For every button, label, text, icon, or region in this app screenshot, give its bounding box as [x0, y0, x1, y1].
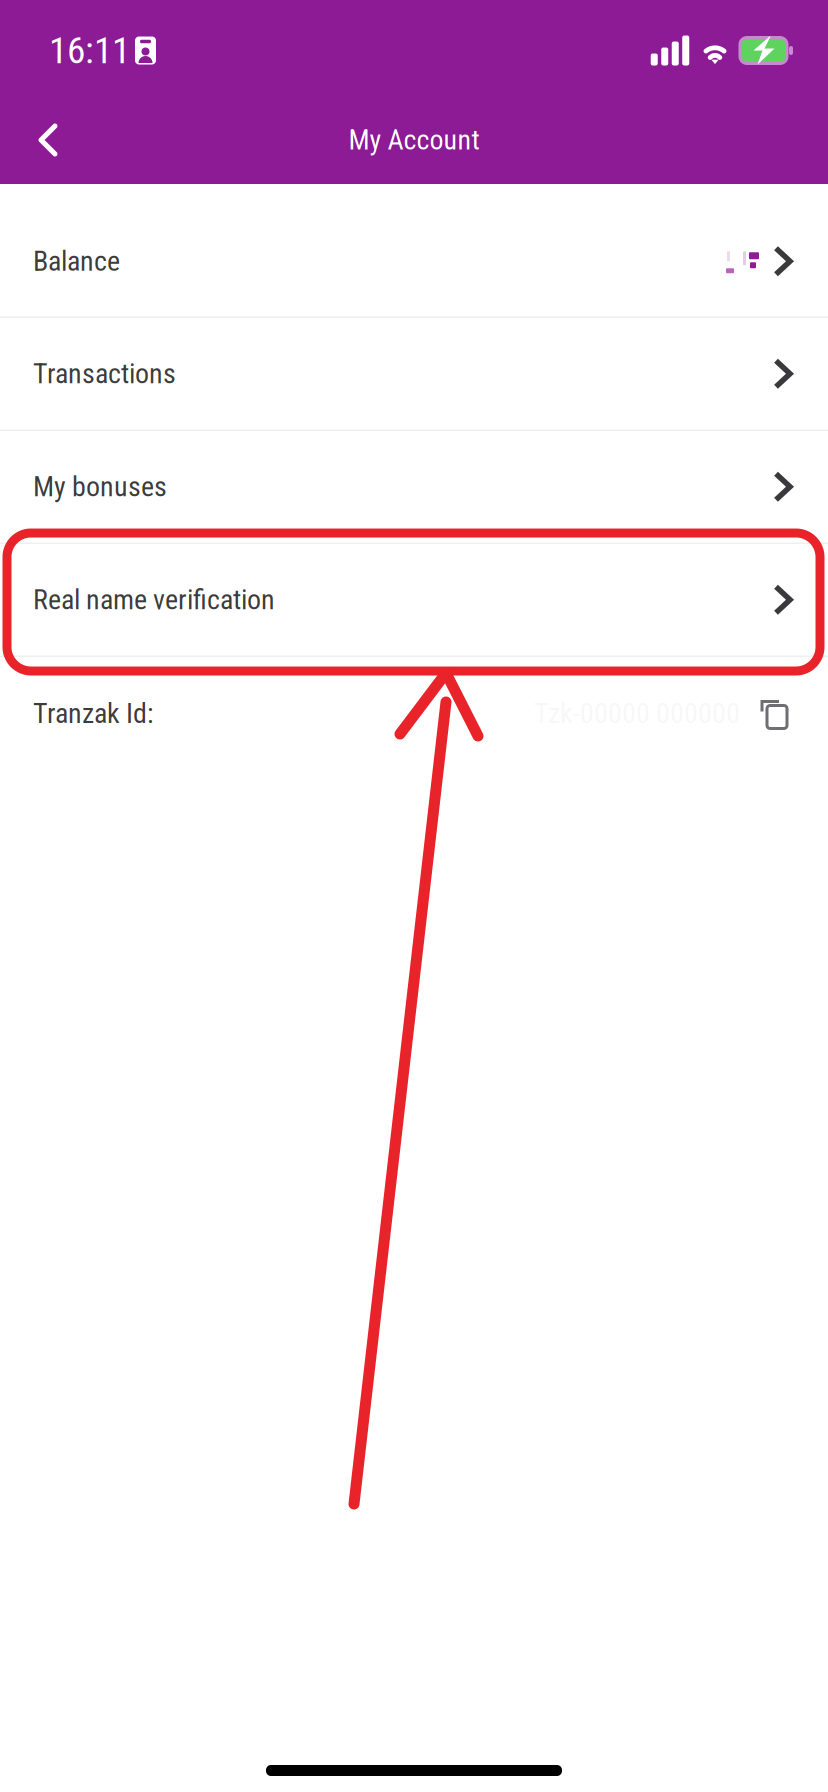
staticText: Transactions	[33, 357, 176, 390]
staticText: My bonuses	[33, 470, 167, 503]
button[interactable]: Real name verification	[0, 544, 828, 657]
button[interactable]: Transactions	[0, 318, 828, 431]
staticText: Balance	[33, 245, 120, 278]
staticText: My Account	[348, 124, 479, 156]
staticText: Real name verification	[33, 583, 275, 616]
button[interactable]: Copy Tranzak Id	[760, 698, 788, 728]
button[interactable]: Back	[0, 96, 88, 184]
staticText: Tranzak Id:	[33, 697, 154, 730]
button[interactable]: Balance	[0, 184, 828, 318]
button[interactable]: My bonuses	[0, 431, 828, 544]
staticText: 16:11	[49, 29, 130, 72]
